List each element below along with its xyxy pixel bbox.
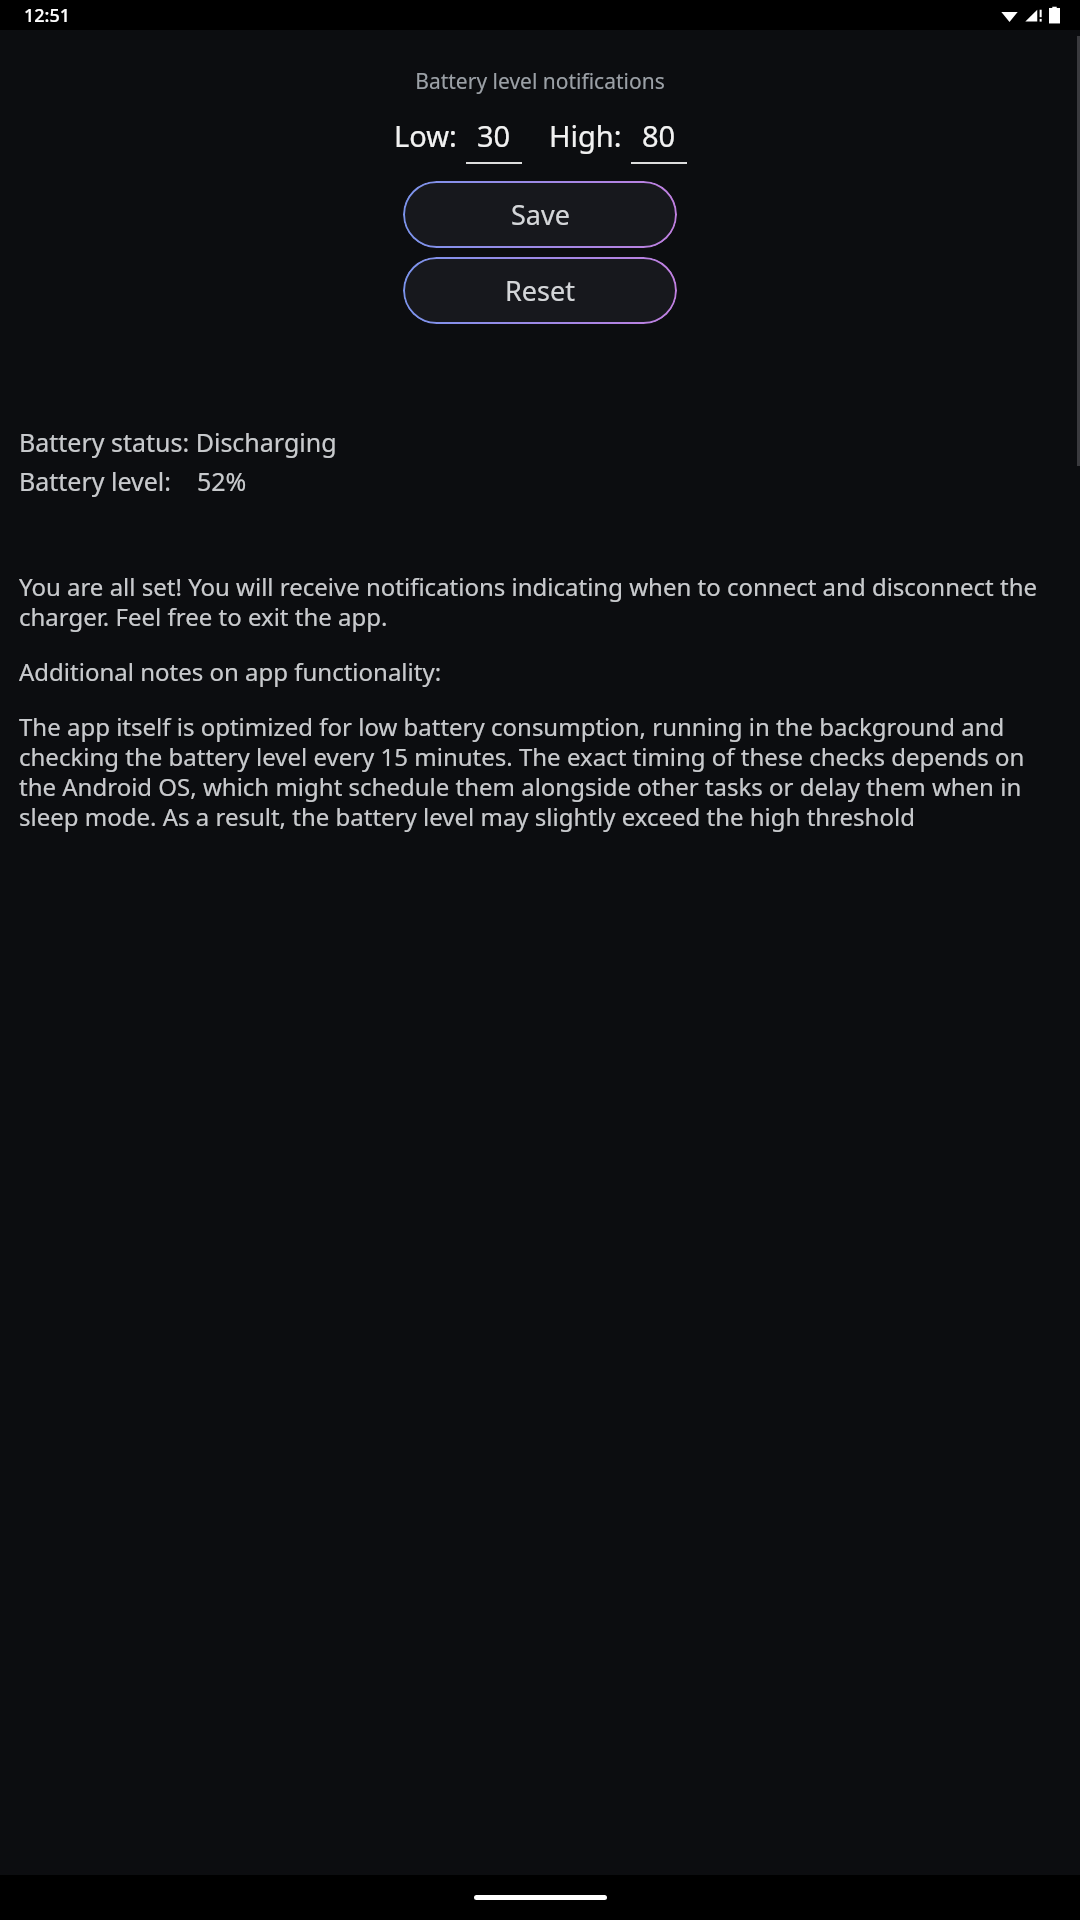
staticText: Battery level notifications	[0, 67, 1080, 96]
staticText: Battery level: 52%	[19, 464, 247, 498]
staticText: Low:	[394, 116, 457, 155]
staticText: The app itself is optimized for low batt…	[19, 710, 1061, 833]
staticText: 30	[477, 116, 511, 155]
button[interactable]: Home	[474, 1895, 607, 1900]
staticText: You are all set! You will receive notifi…	[19, 570, 1061, 633]
staticText: Battery status: Discharging	[19, 425, 337, 459]
staticText: Reset	[505, 272, 575, 309]
staticText: High:	[549, 116, 622, 155]
button[interactable]: Reset	[403, 257, 677, 324]
staticText: 80	[642, 116, 676, 155]
staticText: 12:51	[24, 3, 71, 28]
staticText: Save	[511, 196, 570, 233]
button[interactable]: Save	[403, 181, 677, 248]
staticText: Additional notes on app functionality:	[19, 655, 442, 688]
